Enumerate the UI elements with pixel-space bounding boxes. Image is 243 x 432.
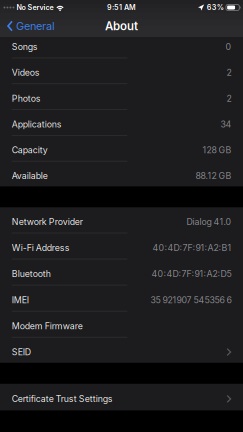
button[interactable]: Wi-Fi Address (0, 233, 243, 259)
button[interactable]: Network Provider (0, 207, 243, 233)
button[interactable]: IMEI (0, 285, 243, 311)
staticText: Bluetooth (12, 269, 51, 279)
staticText: 2 (226, 93, 231, 104)
staticText: Capacity (12, 145, 48, 155)
staticText: General (16, 19, 55, 33)
staticText: 128 GB (202, 145, 231, 155)
button[interactable]: Photos (0, 84, 243, 109)
staticText: 9:51 AM (107, 3, 136, 12)
button[interactable]: SEID (0, 338, 243, 363)
staticText: 88.12 GB (195, 170, 231, 181)
staticText: Applications (12, 119, 62, 129)
staticText: Certificate Trust Settings (12, 394, 113, 404)
staticText: 40:4D:7F:91:A2:B1 (152, 242, 231, 253)
staticText: About (105, 19, 138, 33)
button[interactable]: Capacity (0, 136, 243, 161)
button[interactable]: General (0, 15, 60, 37)
staticText: 63% (207, 3, 224, 12)
staticText: Dialog 41.0 (186, 216, 231, 227)
button[interactable]: Modem Firmware (0, 311, 243, 337)
staticText: Songs (12, 41, 38, 52)
button[interactable]: Videos (0, 58, 243, 83)
button[interactable]: Certificate Trust Settings (0, 384, 243, 410)
staticText: Modem Firmware (12, 321, 83, 331)
staticText: SEID (12, 347, 31, 357)
staticText: Network Provider (12, 216, 83, 227)
staticText: Available (12, 170, 48, 181)
staticText: 35 921907 545356 6 (150, 295, 231, 305)
staticText: 2 (226, 67, 231, 78)
staticText: Wi-Fi Address (12, 242, 70, 253)
staticText: 34 (220, 119, 231, 129)
staticText: Videos (12, 67, 40, 78)
button[interactable]: Applications (0, 110, 243, 135)
staticText: Photos (12, 93, 41, 104)
button[interactable]: Songs (0, 37, 243, 58)
button[interactable]: Available (0, 161, 243, 187)
button[interactable]: Bluetooth (0, 259, 243, 285)
staticText: IMEI (12, 295, 29, 305)
staticText: No Service (16, 3, 53, 12)
staticText: 40:4D:7F:91:A2:D5 (151, 269, 231, 279)
staticText: 0 (225, 41, 231, 52)
